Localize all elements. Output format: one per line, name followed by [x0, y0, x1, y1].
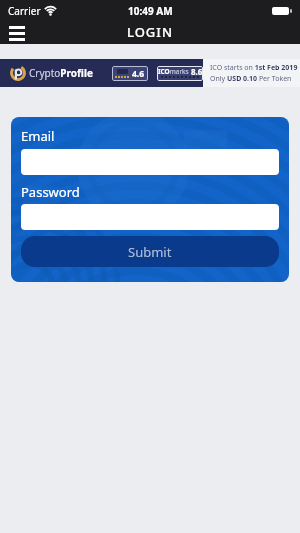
button[interactable] [21, 149, 279, 175]
staticText: Password [21, 183, 80, 201]
staticText: 10:49 AM [128, 4, 173, 18]
staticText: Email [21, 127, 55, 145]
button[interactable]: Submit [21, 236, 279, 267]
staticText: LOGIN [127, 23, 174, 41]
button[interactable]: CryptoProfile [0, 59, 300, 87]
staticText: ICOmarks [158, 67, 189, 76]
staticText: CryptoProfile [29, 66, 93, 80]
staticText: ICO starts on 1st Feb 2019 [210, 63, 298, 73]
button[interactable] [9, 26, 25, 41]
staticText: Carrier [8, 4, 41, 18]
staticText: 8.6 [191, 66, 203, 76]
staticText: Only USD 0.10 Per Token [210, 74, 292, 84]
staticText: 4.6 [132, 68, 145, 80]
button[interactable] [21, 204, 279, 230]
staticText: Submit [128, 243, 172, 261]
